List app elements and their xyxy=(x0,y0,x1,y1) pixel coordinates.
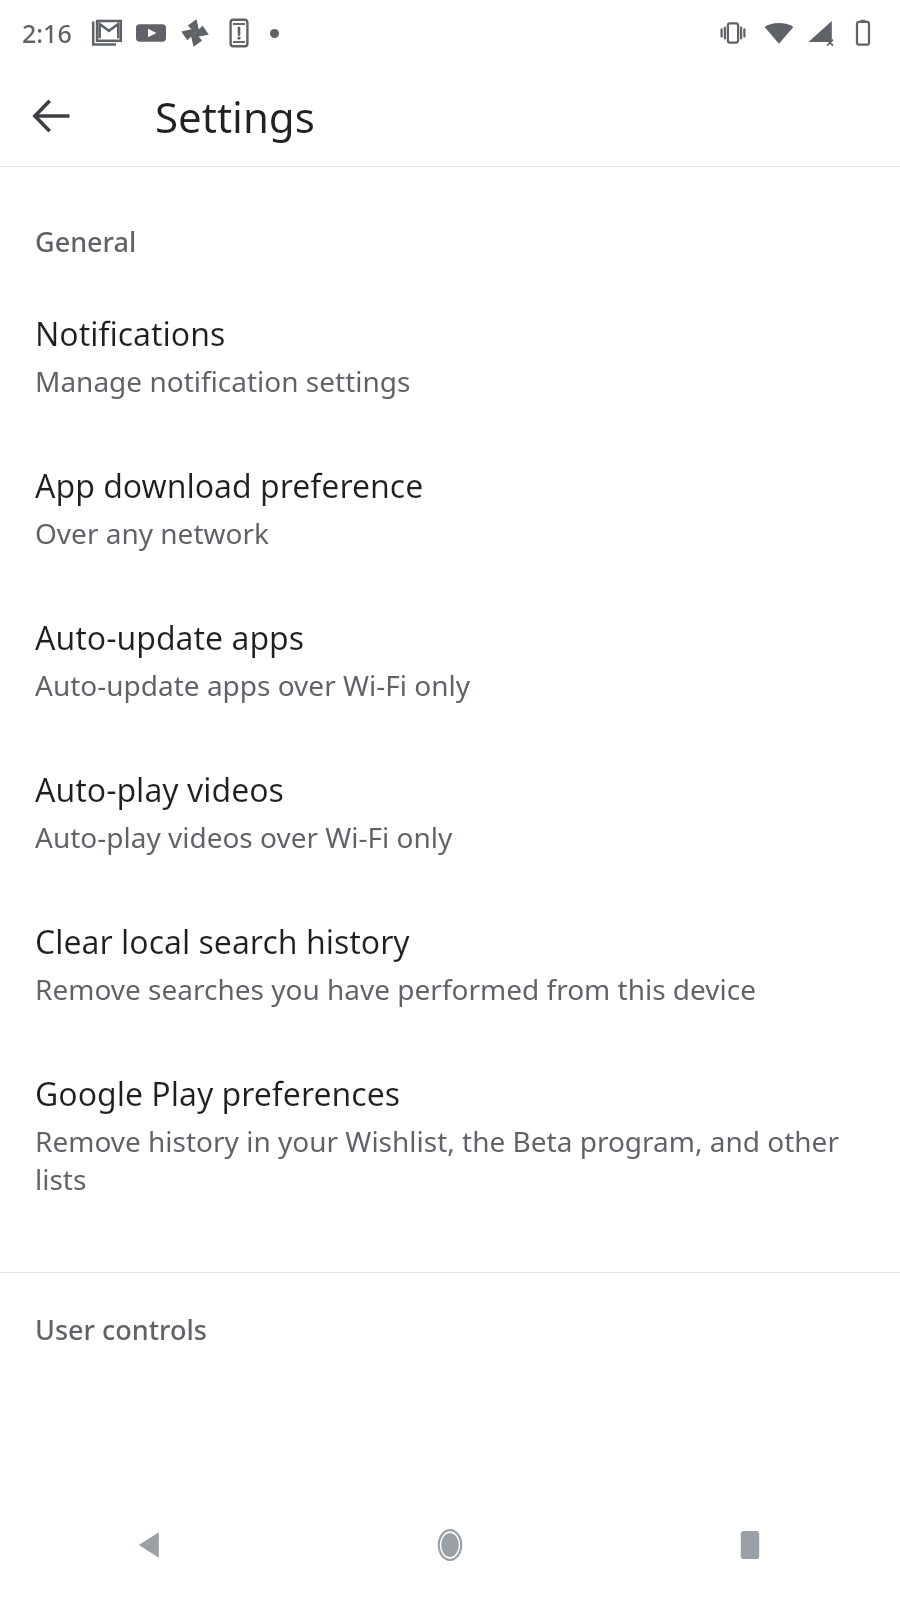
staticText: Notifications xyxy=(35,312,226,356)
button[interactable]: Google Play preferences xyxy=(0,1072,900,1198)
staticText: Settings xyxy=(155,88,315,145)
button[interactable]: Auto-update apps xyxy=(0,616,900,704)
button[interactable]: Recent apps xyxy=(600,1490,900,1600)
staticText: Remove searches you have performed from … xyxy=(35,970,757,1008)
staticText: Auto-update apps xyxy=(35,616,305,660)
staticText: User controls xyxy=(35,1311,207,1348)
staticText: General xyxy=(35,223,137,260)
staticText: Over any network xyxy=(35,514,269,552)
button[interactable]: Clear local search history xyxy=(0,920,900,1008)
button[interactable]: Auto-play videos xyxy=(0,768,900,856)
staticText: Google Play preferences xyxy=(35,1072,401,1116)
button[interactable]: Back xyxy=(14,78,90,154)
button[interactable]: Notifications xyxy=(0,312,900,400)
button[interactable]: Back xyxy=(0,1490,300,1600)
staticText: Remove history in your Wishlist, the Bet… xyxy=(35,1122,842,1198)
staticText: Auto-play videos over Wi-Fi only xyxy=(35,818,453,856)
staticText: Auto-update apps over Wi-Fi only xyxy=(35,666,471,704)
staticText: 2:16 xyxy=(22,16,72,50)
staticText: Clear local search history xyxy=(35,920,410,964)
button[interactable]: App download preference xyxy=(0,464,900,552)
staticText: Manage notification settings xyxy=(35,362,411,400)
staticText: Auto-play videos xyxy=(35,768,284,812)
button[interactable]: Home xyxy=(300,1490,600,1600)
staticText: App download preference xyxy=(35,464,424,508)
